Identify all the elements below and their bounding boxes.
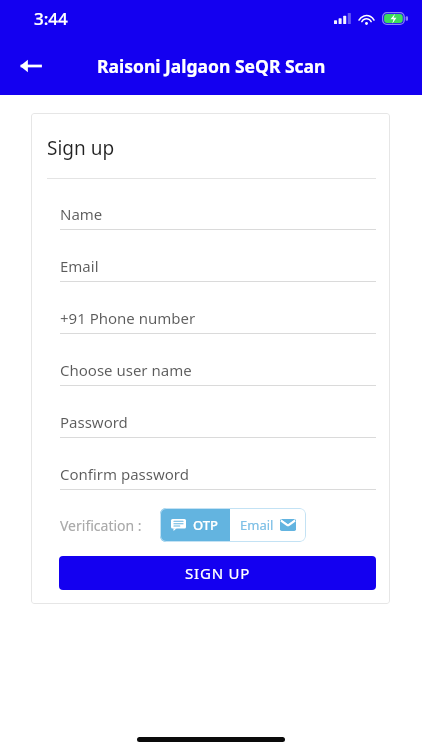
button[interactable]: OTP	[160, 508, 230, 542]
button[interactable]: SIGN UP	[59, 556, 376, 590]
staticText: SIGN UP	[185, 563, 251, 583]
staticText: Email	[60, 256, 99, 276]
staticText: Verification :	[60, 516, 142, 535]
staticText: Raisoni Jalgaon SeQR Scan	[97, 54, 326, 78]
button[interactable]: Confirm password	[60, 464, 376, 490]
button[interactable]: Back	[8, 43, 54, 89]
staticText: Name	[60, 204, 103, 224]
button[interactable]: Email	[60, 256, 376, 282]
button[interactable]: Name	[60, 204, 376, 230]
button[interactable]: Password	[60, 412, 376, 438]
button[interactable]: Email	[230, 508, 306, 542]
staticText: Confirm password	[60, 464, 189, 484]
staticText: Email	[240, 516, 274, 534]
staticText: +91 Phone number	[60, 308, 196, 328]
staticText: OTP	[193, 516, 219, 534]
button[interactable]: Choose user name	[60, 360, 376, 386]
staticText: Sign up	[47, 135, 115, 161]
staticText: Choose user name	[60, 360, 192, 380]
staticText: 3:44	[34, 7, 68, 30]
staticText: Password	[60, 412, 128, 432]
button[interactable]: +91 Phone number	[60, 308, 376, 334]
